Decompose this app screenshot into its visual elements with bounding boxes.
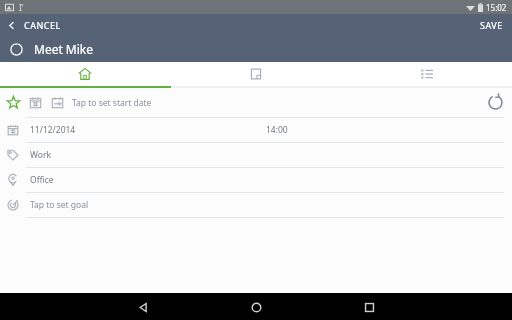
button[interactable]: Tap to set start date [0,88,512,117]
staticText: Work [30,149,51,161]
button[interactable]: 11/12/2014 [0,118,512,142]
staticText: I' [19,2,24,13]
button[interactable]: Back [130,294,156,320]
button[interactable]: Notes [170,62,341,86]
staticText: CANCEL [24,19,61,31]
staticText: 11/12/2014 [30,124,76,136]
button[interactable]: Checklist [341,62,512,86]
button[interactable]: SAVE [471,15,512,35]
button[interactable]: Meet Mike [0,36,512,62]
staticText: Meet Mike [34,41,94,57]
staticText: Tap to set start date [72,97,152,109]
button[interactable]: Repeat [487,94,504,111]
button[interactable]: CANCEL [0,15,73,35]
staticText: SAVE [480,19,503,31]
staticText: 14:00 [266,124,288,136]
button[interactable]: Work [0,143,512,167]
staticText: Tap to set goal [30,199,89,211]
button[interactable]: Details [0,62,170,86]
button[interactable]: Office [0,168,512,192]
button[interactable]: Tap to set goal [0,193,512,217]
staticText: Office [30,174,54,186]
staticText: 15:02 [486,2,507,13]
button[interactable]: Recents [356,294,382,320]
button[interactable]: Home [243,294,269,320]
